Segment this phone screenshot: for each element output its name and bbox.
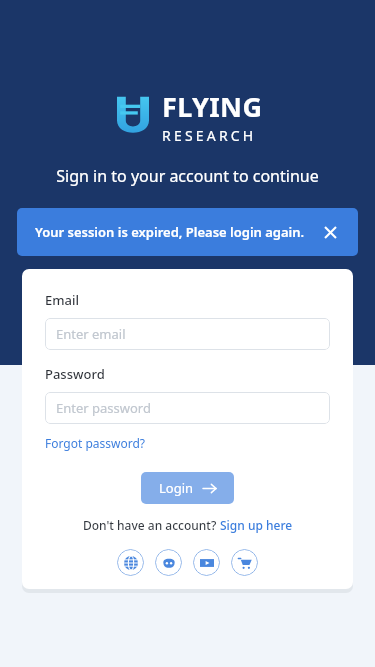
button[interactable]: Your session is expired, Please login ag… — [17, 208, 358, 256]
staticText: Your session is expired, Please login ag… — [35, 223, 305, 241]
staticText: Sign up here — [220, 517, 293, 533]
staticText: Email — [45, 291, 80, 309]
staticText: Login — [159, 479, 194, 497]
staticText: Don't have an account? — [83, 517, 220, 533]
button[interactable]: Forgot password? — [45, 435, 146, 451]
button[interactable]: Discord — [155, 549, 182, 576]
button[interactable]: Enter password — [45, 392, 330, 424]
staticText: Enter email — [56, 325, 126, 343]
button[interactable]: Dismiss alert — [321, 223, 339, 241]
staticText: Password — [45, 365, 105, 383]
button[interactable]: Login — [141, 472, 234, 504]
button[interactable]: Sign up here — [220, 517, 293, 533]
button[interactable]: YouTube — [193, 549, 220, 576]
staticText: Enter password — [56, 399, 151, 417]
button[interactable]: Enter email — [45, 318, 330, 350]
staticText: Forgot password? — [45, 435, 146, 451]
button[interactable]: Website — [117, 549, 144, 576]
staticText: RESEARCH — [162, 126, 257, 145]
button[interactable]: Store — [231, 549, 258, 576]
staticText: FLYING — [162, 88, 263, 125]
staticText: Sign in to your account to continue — [56, 165, 319, 187]
